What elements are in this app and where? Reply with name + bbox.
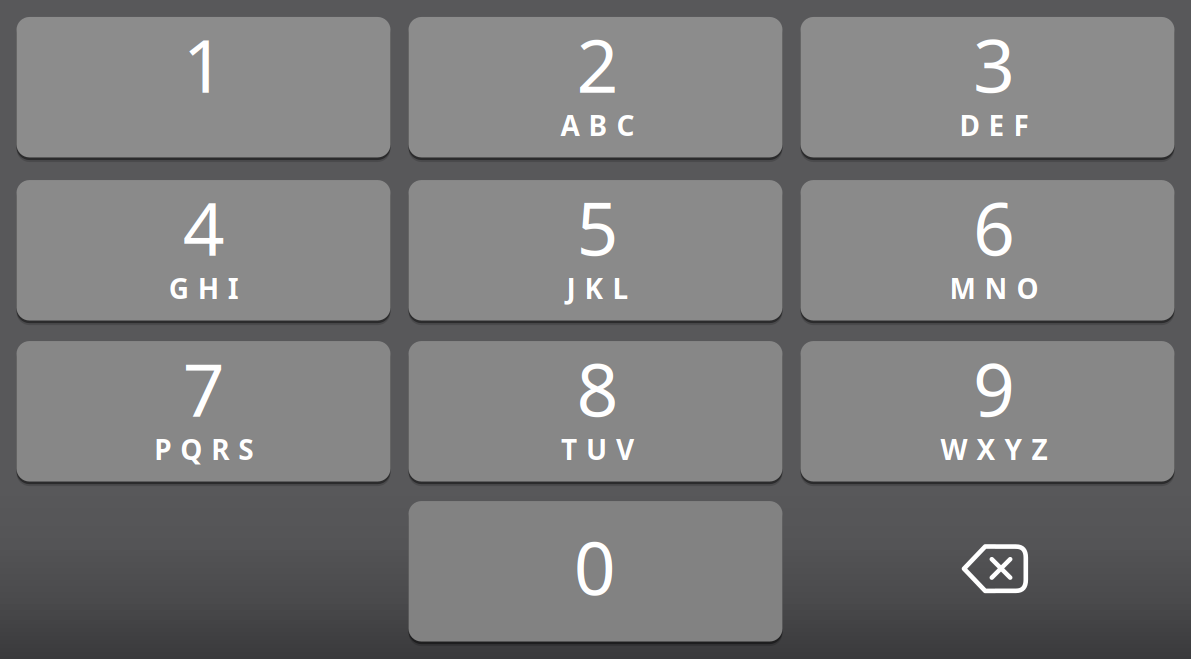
staticText: TUV	[561, 431, 634, 468]
button[interactable]: 9	[800, 341, 1174, 482]
staticText: 0	[574, 518, 616, 615]
staticText: 1	[183, 16, 225, 113]
staticText: 6	[973, 179, 1015, 276]
button[interactable]: 6	[800, 180, 1174, 321]
staticText: 5	[576, 179, 618, 276]
staticText: ABC	[560, 106, 634, 144]
button[interactable]: Delete	[808, 498, 1182, 639]
staticText: 9	[973, 340, 1015, 437]
staticText: 7	[183, 340, 225, 437]
staticText: 4	[183, 179, 225, 276]
staticText: DEF	[959, 106, 1028, 144]
button[interactable]: 5	[408, 180, 782, 321]
staticText: GHI	[169, 270, 239, 307]
staticText: MNO	[949, 270, 1038, 307]
button[interactable]: 0	[408, 501, 782, 641]
button[interactable]: 7	[16, 341, 390, 482]
button[interactable]: 4	[16, 180, 390, 321]
button[interactable]: 8	[408, 341, 782, 482]
button[interactable]: 3	[800, 17, 1174, 157]
staticText: JKL	[566, 270, 628, 307]
staticText: WXYZ	[940, 431, 1047, 468]
staticText: 3	[973, 16, 1015, 113]
staticText: PQRS	[154, 431, 253, 468]
staticText: 8	[576, 340, 618, 437]
button[interactable]: 1	[16, 17, 390, 157]
staticText: 2	[576, 16, 618, 113]
button[interactable]: 2	[408, 17, 782, 157]
